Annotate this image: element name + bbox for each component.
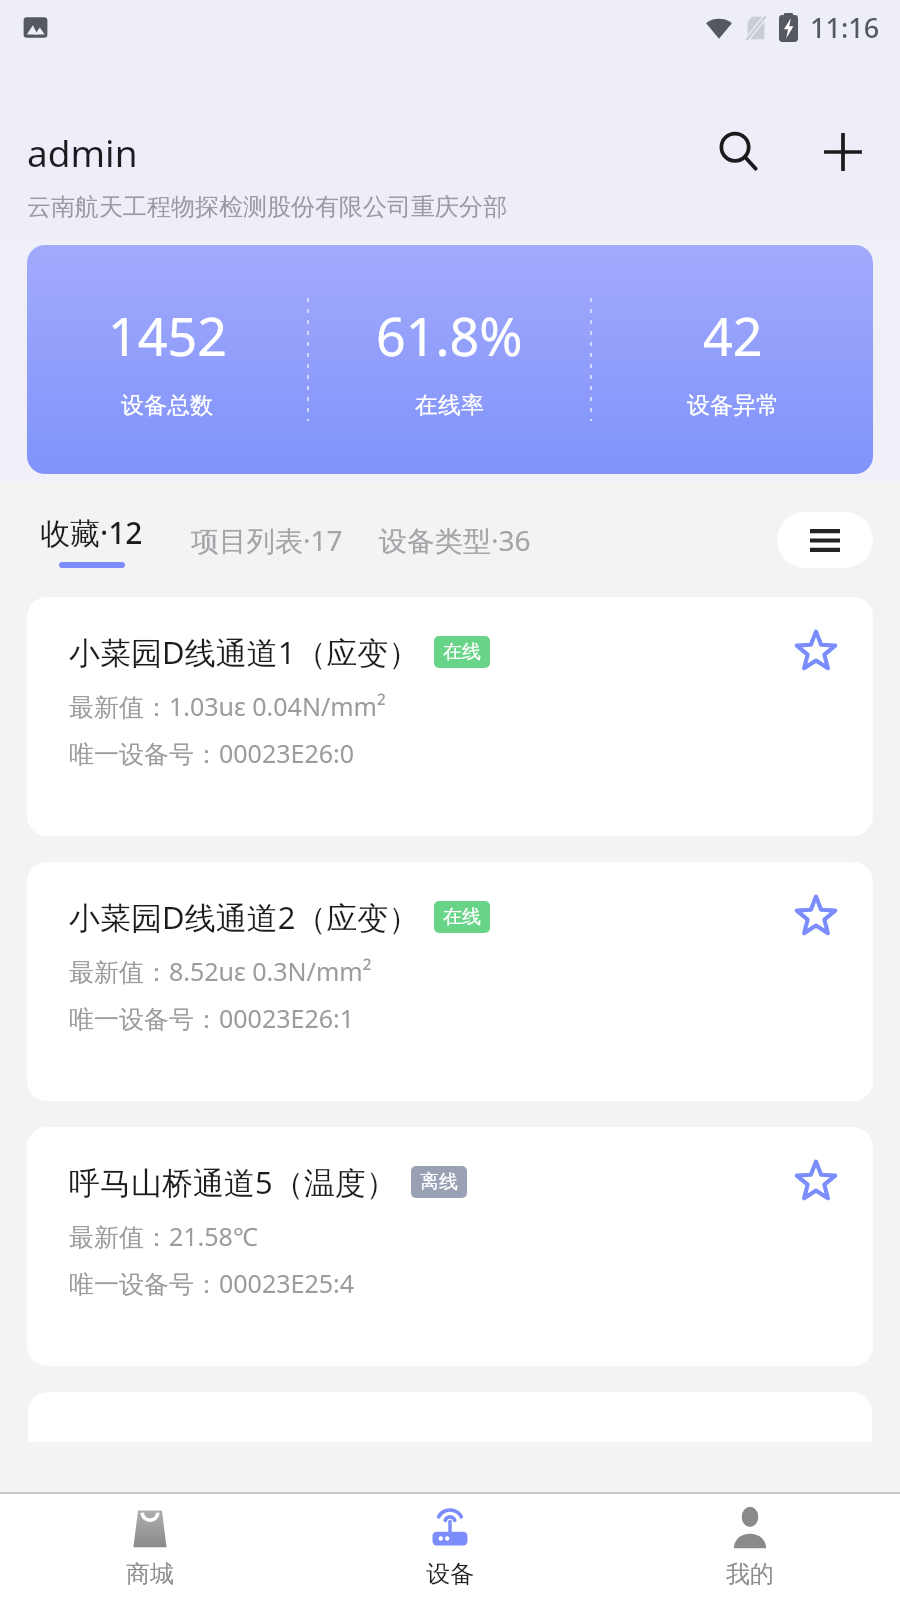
staticText: 最新值：8.52uε 0.3N/mm²: [69, 954, 372, 988]
button[interactable]: 小菜园D线通道1（应变）: [27, 597, 873, 836]
staticText: admin: [27, 127, 138, 177]
staticText: 小菜园D线通道1（应变）: [69, 631, 420, 673]
staticText: 设备总数: [121, 391, 213, 420]
staticText: 11:16: [810, 9, 880, 46]
staticText: 1452: [108, 300, 227, 371]
button[interactable]: Favorite: [785, 884, 847, 946]
staticText: 42: [703, 300, 763, 371]
button[interactable]: 我的: [600, 1494, 900, 1600]
staticText: 设备异常: [687, 391, 779, 420]
staticText: 在线: [443, 640, 481, 664]
staticText: 唯一设备号：00023E25:4: [69, 1266, 355, 1300]
button[interactable]: 1452: [27, 245, 873, 474]
button[interactable]: Add: [812, 126, 874, 178]
staticText: 设备类型·36: [379, 521, 531, 559]
staticText: 61.8%: [376, 300, 523, 371]
staticText: 呼马山桥通道5（温度）: [69, 1161, 397, 1203]
button[interactable]: Favorite: [785, 619, 847, 681]
staticText: 最新值：21.58℃: [69, 1219, 258, 1253]
button[interactable]: 商城: [0, 1494, 300, 1600]
staticText: 离线: [420, 1170, 458, 1194]
staticText: 唯一设备号：00023E26:0: [69, 736, 355, 770]
staticText: 唯一设备号：00023E26:1: [69, 1001, 355, 1035]
button[interactable]: 设备: [300, 1494, 600, 1600]
staticText: 最新值：1.03uε 0.04N/mm²: [69, 689, 386, 723]
staticText: 项目列表·17: [191, 521, 343, 559]
button[interactable]: Menu: [777, 512, 873, 568]
button[interactable]: Favorite: [785, 1149, 847, 1211]
staticText: 在线率: [415, 391, 484, 420]
staticText: 收藏·12: [40, 512, 143, 553]
button[interactable]: 小菜园D线通道2（应变）: [27, 862, 873, 1101]
button[interactable]: 项目列表·17: [185, 509, 349, 571]
button[interactable]: 收藏·12: [34, 508, 149, 572]
staticText: 云南航天工程物探检测股份有限公司重庆分部: [27, 192, 507, 222]
staticText: 在线: [443, 905, 481, 929]
staticText: 设备: [426, 1559, 474, 1589]
staticText: 小菜园D线通道2（应变）: [69, 896, 420, 938]
staticText: 商城: [126, 1559, 174, 1589]
button[interactable]: 呼马山桥通道5（温度）: [27, 1127, 873, 1366]
staticText: 我的: [726, 1559, 774, 1589]
button[interactable]: Search: [708, 126, 770, 178]
button[interactable]: 设备类型·36: [373, 509, 537, 571]
